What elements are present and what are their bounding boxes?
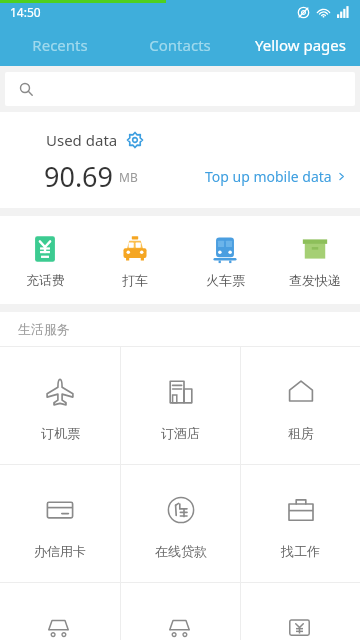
button[interactable]: Yellow pages xyxy=(240,24,360,66)
staticText: 办信用卡 xyxy=(34,543,86,559)
button[interactable] xyxy=(241,583,360,640)
staticText: 找工作 xyxy=(281,543,320,559)
staticText: 租房 xyxy=(288,425,314,441)
staticText: 打车 xyxy=(122,272,148,288)
staticText: 火车票 xyxy=(206,272,245,288)
button[interactable]: 订机票 xyxy=(0,347,120,464)
staticText: 14:50 xyxy=(10,4,41,20)
staticText: Top up mobile data xyxy=(205,167,332,186)
staticText: Yellow pages xyxy=(255,35,346,55)
button[interactable]: Data settings xyxy=(126,131,144,149)
button[interactable]: 火车票 xyxy=(180,216,270,304)
staticText: Contacts xyxy=(149,35,211,55)
button[interactable]: 充话费 xyxy=(0,216,90,304)
button[interactable]: 办信用卡 xyxy=(0,465,120,582)
staticText: 在线贷款 xyxy=(155,543,207,559)
button[interactable]: Contacts xyxy=(120,24,240,66)
staticText: 90.69 xyxy=(44,158,114,195)
button[interactable]: 租房 xyxy=(241,347,360,464)
button[interactable]: 找工作 xyxy=(241,465,360,582)
button[interactable] xyxy=(121,583,240,640)
staticText: 订机票 xyxy=(41,425,80,441)
button[interactable]: 查发快递 xyxy=(270,216,360,304)
button[interactable]: 打车 xyxy=(90,216,180,304)
button[interactable] xyxy=(5,72,355,106)
staticText: 生活服务 xyxy=(18,321,70,337)
staticText: Used data xyxy=(46,130,118,150)
button[interactable]: 订酒店 xyxy=(121,347,240,464)
staticText: MB xyxy=(119,169,138,185)
staticText: 充话费 xyxy=(26,272,65,288)
button[interactable] xyxy=(0,583,120,640)
staticText: 订酒店 xyxy=(161,425,200,441)
button[interactable]: Recents xyxy=(0,24,120,66)
staticText: Recents xyxy=(32,35,88,55)
staticText: 查发快递 xyxy=(289,272,341,288)
button[interactable]: 在线贷款 xyxy=(121,465,240,582)
button[interactable]: Top up mobile data xyxy=(205,167,346,186)
